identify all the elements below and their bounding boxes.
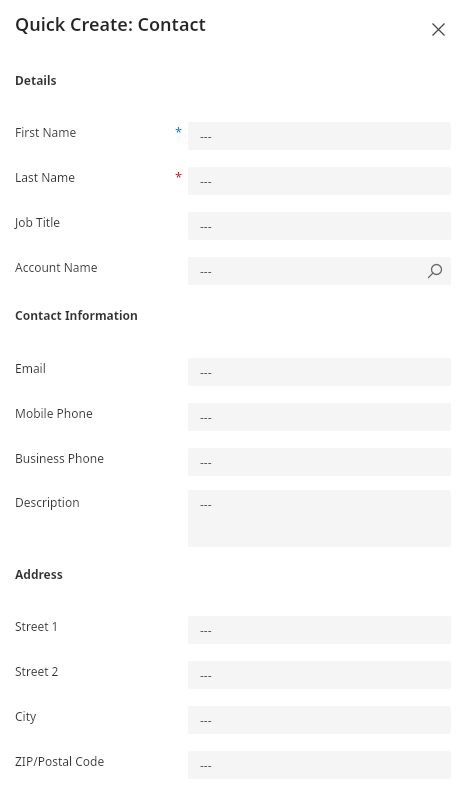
button[interactable]: --- — [188, 661, 451, 689]
staticText: Last Name — [15, 169, 76, 185]
button[interactable]: --- — [188, 358, 451, 386]
staticText: --- — [200, 364, 212, 380]
staticText: ZIP/Postal Code — [15, 753, 105, 769]
staticText: --- — [200, 128, 212, 144]
staticText: Description — [15, 494, 80, 510]
staticText: --- — [200, 454, 212, 470]
staticText: --- — [200, 757, 212, 773]
staticText: City — [15, 708, 37, 724]
staticText: Details — [15, 72, 57, 88]
staticText: --- — [200, 622, 212, 638]
button[interactable]: --- — [188, 167, 451, 195]
staticText: Address — [15, 566, 63, 582]
staticText: --- — [200, 218, 212, 234]
staticText: * — [175, 123, 183, 141]
button[interactable]: --- — [188, 122, 451, 150]
staticText: --- — [200, 667, 212, 683]
staticText: First Name — [15, 124, 77, 140]
button[interactable]: --- — [188, 616, 451, 644]
staticText: Business Phone — [15, 450, 104, 466]
staticText: --- — [200, 173, 212, 189]
staticText: Account Name — [15, 259, 98, 275]
button[interactable]: --- — [188, 751, 451, 779]
staticText: Job Title — [15, 214, 61, 230]
button[interactable] — [424, 15, 452, 43]
staticText: --- — [200, 712, 212, 728]
staticText: Mobile Phone — [15, 405, 93, 421]
staticText: * — [175, 168, 183, 186]
staticText: --- — [200, 263, 212, 279]
button[interactable]: --- — [188, 403, 451, 431]
button[interactable]: --- — [188, 706, 451, 734]
staticText: Street 1 — [15, 618, 59, 634]
staticText: Quick Create: Contact — [15, 12, 206, 37]
staticText: --- — [200, 409, 212, 425]
button[interactable]: --- — [188, 490, 451, 547]
button[interactable]: --- — [188, 448, 451, 476]
staticText: Street 2 — [15, 663, 59, 679]
staticText: Email — [15, 360, 46, 376]
staticText: --- — [200, 496, 212, 512]
button[interactable]: --- — [188, 257, 451, 285]
staticText: Contact Information — [15, 307, 138, 323]
button[interactable]: --- — [188, 212, 451, 240]
